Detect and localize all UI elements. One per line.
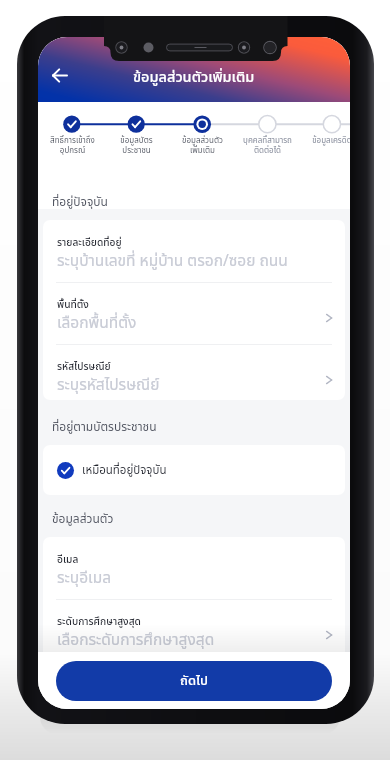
button[interactable]: พื้นที่ตั้ง [43,282,345,344]
button[interactable]: สิทธิ์การเข้าถึง อุปกรณ์ [39,135,105,156]
staticText: ข้อมูลเครดิต [312,135,350,147]
staticText: ระบุอีเมล [57,567,112,590]
button[interactable]: รหัสไปรษณีย์ [43,344,345,400]
button[interactable]: ข้อมูลเครดิต [299,135,350,147]
staticText: สิทธิ์การเข้าถึง อุปกรณ์ [50,135,95,156]
staticText: เลือกระดับการศึกษาสูงสุด [57,629,215,652]
staticText: ข้อมูลส่วนตัวเพิ่มเติม [133,67,255,89]
staticText: ถัดไป [180,671,208,691]
button[interactable]: ข้อมูลส่วนตัว เพิ่มเติม [169,135,235,156]
staticText: ที่อยู่ปัจจุบัน [52,193,108,211]
button[interactable]: Back [47,62,73,88]
staticText: ข้อมูลส่วนตัว [52,510,114,528]
staticText: รหัสไปรษณีย์ [57,359,111,374]
button[interactable]: ระดับการศึกษาสูงสุด [43,599,345,661]
staticText: ระดับการศึกษาสูงสุด [57,614,141,629]
staticText: ข้อมูลส่วนตัว เพิ่มเติม [182,135,223,156]
staticText: ระบุบ้านเลขที่ หมู่บ้าน ตรอก/ซอย ถนน [57,250,288,273]
staticText: เลือกพื้นที่ตั้ง [57,312,137,335]
staticText: ระบุรหัสไปรษณีย์ [57,374,160,397]
button[interactable]: ถัดไป [56,661,332,701]
button[interactable]: รายละเอียดที่อยู่ [43,220,345,282]
staticText: รายละเอียดที่อยู่ [57,235,122,250]
staticText: ที่อยู่ตามบัตรประชาชน [52,418,157,436]
staticText: ข้อมูลบัตร ประชาชน [120,135,153,156]
staticText: เหมือนที่อยู่ปัจจุบัน [82,462,167,479]
staticText: พื้นที่ตั้ง [57,297,89,312]
staticText: บุคคลที่สามารถ ติดต่อได้ [243,135,292,156]
button[interactable]: อีเมล [43,537,345,599]
button[interactable]: เหมือนที่อยู่ปัจจุบัน [43,445,345,495]
staticText: อีเมล [57,552,79,567]
button[interactable]: ข้อมูลบัตร ประชาชน [103,135,169,156]
button[interactable]: บุคคลที่สามารถ ติดต่อได้ [234,135,300,156]
